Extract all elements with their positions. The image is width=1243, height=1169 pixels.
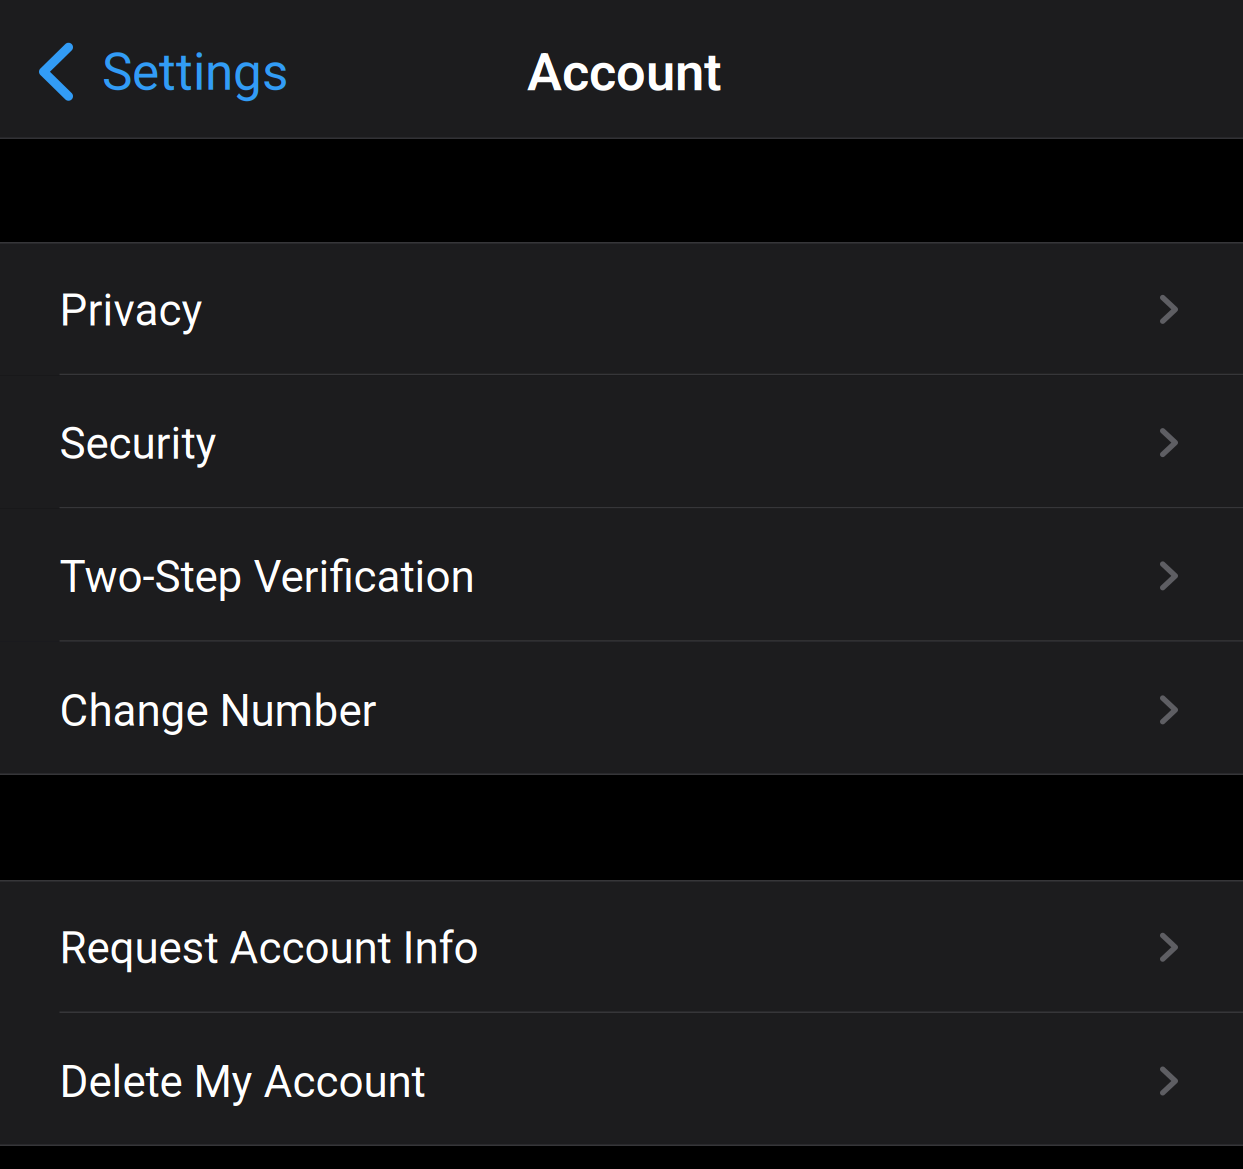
button[interactable]: Change Number <box>0 642 1243 775</box>
staticText: Security <box>59 418 216 469</box>
staticText: Settings <box>102 42 288 102</box>
button[interactable]: Settings <box>0 21 306 116</box>
staticText: Privacy <box>59 285 202 336</box>
staticText: Change Number <box>59 685 376 737</box>
button[interactable]: Request Account Info <box>0 880 1243 1013</box>
staticText: Request Account Info <box>59 922 478 974</box>
staticText: Delete My Account <box>59 1056 425 1108</box>
button[interactable]: Privacy <box>0 242 1243 375</box>
staticText: Two-Step Verification <box>59 551 474 603</box>
button[interactable]: Two-Step Verification <box>0 508 1243 642</box>
button[interactable]: Security <box>0 375 1243 508</box>
staticText: Account <box>527 41 722 103</box>
button[interactable]: Delete My Account <box>0 1013 1243 1146</box>
